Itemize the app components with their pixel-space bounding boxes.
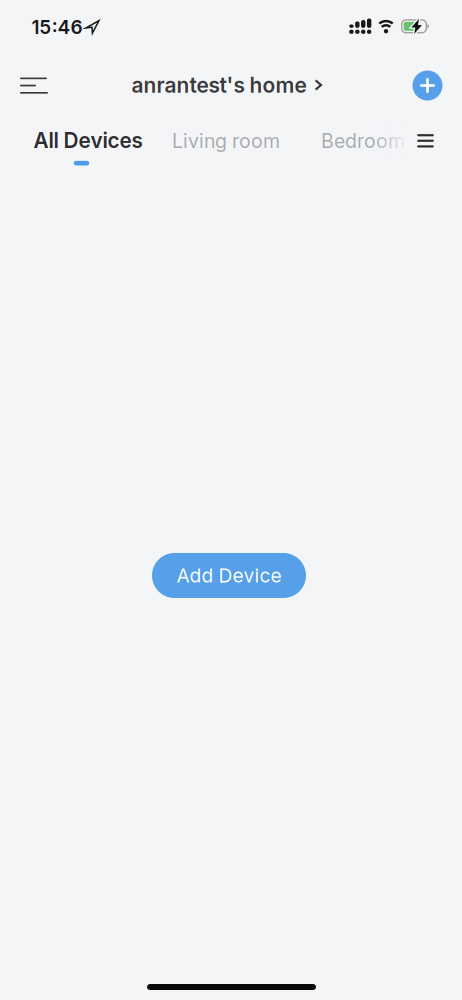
staticText: anrantest's home	[131, 72, 306, 98]
button[interactable]: Add	[412, 70, 442, 100]
button[interactable]: Room list	[410, 127, 440, 155]
button[interactable]: anrantest's home	[131, 72, 322, 98]
staticText: All Devices	[33, 128, 142, 153]
button[interactable]: All Devices	[33, 128, 142, 153]
staticText: 15:46	[31, 15, 82, 38]
staticText: Add Device	[176, 564, 281, 587]
button[interactable]: Menu	[14, 71, 54, 101]
staticText: Living room	[172, 129, 280, 153]
button[interactable]: Add Device	[152, 553, 306, 598]
staticText: Bedroom	[321, 129, 405, 153]
button[interactable]: Living room	[172, 129, 280, 153]
button[interactable]: Bedroom	[321, 129, 405, 153]
